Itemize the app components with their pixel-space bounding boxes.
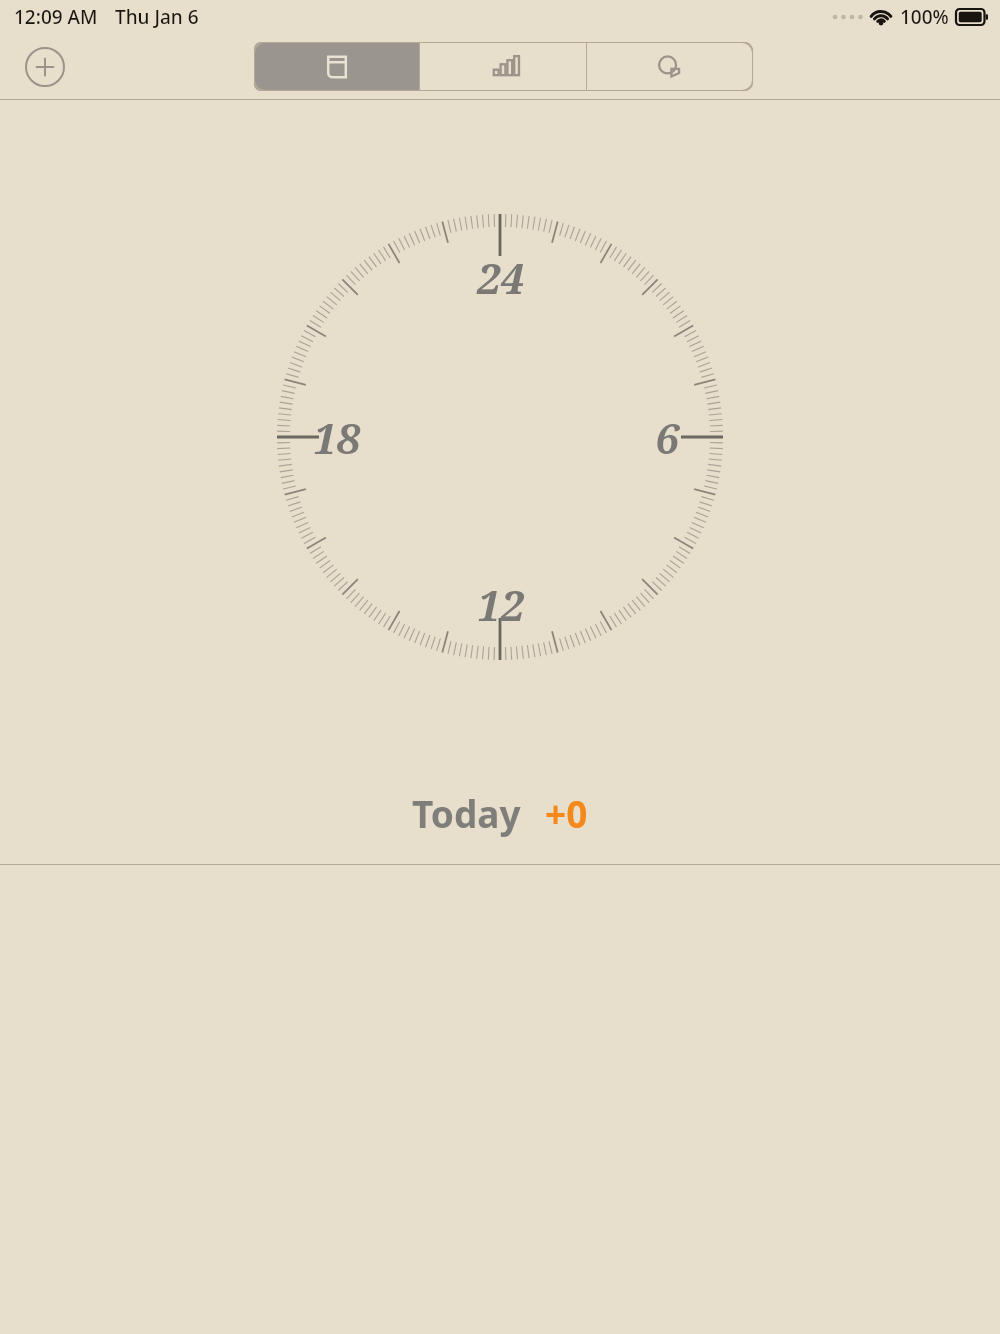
staticText: 24 [477,249,524,306]
staticText: 12:09 AM [14,4,98,30]
staticText: 12 [477,576,524,633]
button[interactable]: Add entry [21,43,69,91]
staticText: Today [412,788,521,838]
staticText: +0 [545,788,588,838]
staticText: Thu Jan 6 [115,4,199,30]
staticText: 100% [900,4,949,30]
button[interactable]: Bar chart view [420,42,586,91]
button[interactable]: Pie chart view [587,42,753,91]
staticText: 6 [655,409,679,466]
staticText: 18 [313,409,360,466]
button[interactable]: Journal view [254,42,419,91]
